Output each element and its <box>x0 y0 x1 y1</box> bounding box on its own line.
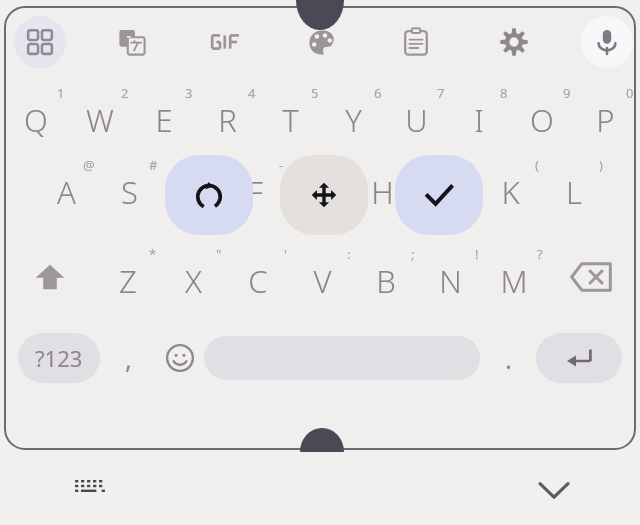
staticText: C <box>248 260 268 302</box>
staticText: X <box>185 260 202 302</box>
staticText: ( <box>535 156 539 174</box>
staticText: 3 <box>185 84 193 102</box>
staticText: 0 <box>626 84 634 102</box>
button[interactable]: Toolbar action <box>106 16 158 68</box>
button[interactable]: Hide keyboard <box>530 466 578 514</box>
button[interactable]: Toolbar action <box>390 16 442 68</box>
button[interactable]: Emoji <box>156 334 204 382</box>
staticText: + <box>467 156 475 174</box>
staticText: G <box>307 171 330 213</box>
button[interactable]: F <box>223 152 286 224</box>
button[interactable]: V <box>290 241 354 313</box>
staticText: ?123 <box>35 343 83 373</box>
button[interactable]: Shift <box>4 238 95 316</box>
button[interactable]: Period <box>480 333 536 383</box>
button[interactable]: Enter <box>536 333 622 383</box>
button[interactable]: B <box>354 241 418 313</box>
staticText: K <box>501 171 520 213</box>
staticText: 9 <box>563 84 571 102</box>
staticText: Q <box>24 99 48 141</box>
button[interactable]: Toolbar action <box>488 16 540 68</box>
button[interactable]: Comma <box>100 333 156 383</box>
staticText: # <box>149 156 158 174</box>
staticText: 4 <box>248 84 256 102</box>
staticText: O <box>530 99 554 141</box>
button[interactable]: W <box>68 80 132 152</box>
staticText: ) <box>599 156 603 174</box>
button[interactable]: P <box>573 80 636 152</box>
staticText: , <box>125 341 132 376</box>
staticText: 7 <box>437 84 445 102</box>
staticText: ! <box>475 245 479 263</box>
staticText: E <box>155 99 173 141</box>
staticText: 2 <box>121 84 129 102</box>
staticText: : <box>347 245 351 263</box>
staticText: D <box>181 171 204 213</box>
button[interactable]: Q <box>4 80 68 152</box>
button[interactable]: X <box>160 241 225 313</box>
staticText: Y <box>345 99 362 141</box>
button[interactable]: O <box>510 80 573 152</box>
staticText: N <box>439 260 462 302</box>
staticText: A <box>57 171 76 213</box>
staticText: ' <box>284 245 287 263</box>
staticText: * <box>149 245 157 263</box>
staticText: T <box>282 99 299 141</box>
staticText: H <box>371 171 394 213</box>
button[interactable]: K <box>478 152 542 224</box>
staticText: ? <box>537 245 543 263</box>
staticText: M <box>500 260 528 302</box>
staticText: I <box>474 99 484 141</box>
button[interactable]: U <box>384 80 447 152</box>
button[interactable]: A <box>34 152 97 224</box>
button[interactable]: G <box>286 152 350 224</box>
button[interactable]: Backspace <box>546 238 636 316</box>
button[interactable]: Toolbar action <box>14 16 66 68</box>
staticText: - <box>406 156 411 174</box>
button[interactable]: T <box>258 80 321 152</box>
button[interactable]: Toolbar action <box>200 16 252 68</box>
button[interactable]: L <box>542 152 606 224</box>
staticText: U <box>405 99 428 141</box>
button[interactable]: M <box>482 241 546 313</box>
staticText: F <box>247 171 263 213</box>
button[interactable]: C <box>225 241 290 313</box>
staticText: B <box>376 260 396 302</box>
staticText: 8 <box>500 84 508 102</box>
button[interactable]: S <box>97 152 160 224</box>
staticText: 6 <box>374 84 382 102</box>
staticText: 1 <box>57 84 65 102</box>
staticText: @ <box>83 156 95 174</box>
staticText: ; <box>411 245 415 263</box>
button[interactable]: Z <box>95 241 160 313</box>
button[interactable]: ?123 <box>18 333 100 383</box>
staticText: P <box>596 99 615 141</box>
button[interactable]: E <box>132 80 195 152</box>
staticText: " <box>216 245 222 263</box>
button[interactable]: Move <box>280 155 368 235</box>
button[interactable]: D <box>160 152 223 224</box>
button[interactable]: Rotate <box>165 155 253 235</box>
button[interactable]: J <box>414 152 478 224</box>
button[interactable]: H <box>350 152 414 224</box>
staticText: S <box>121 171 138 213</box>
button[interactable]: I <box>447 80 510 152</box>
button[interactable]: Toolbar action <box>581 16 633 68</box>
button[interactable]: R <box>195 80 258 152</box>
staticText: J <box>442 171 450 213</box>
staticText: - <box>279 156 284 174</box>
staticText: R <box>218 99 237 141</box>
button[interactable]: Y <box>321 80 384 152</box>
button[interactable]: Toolbar action <box>296 16 348 68</box>
button[interactable]: Confirm <box>395 155 483 235</box>
staticText: Z <box>119 260 137 302</box>
staticText: 5 <box>311 84 319 102</box>
staticText: W <box>86 99 114 141</box>
button[interactable]: N <box>418 241 482 313</box>
button[interactable]: Switch keyboard <box>68 468 112 512</box>
staticText: V <box>313 260 332 302</box>
staticText: L <box>566 171 582 213</box>
